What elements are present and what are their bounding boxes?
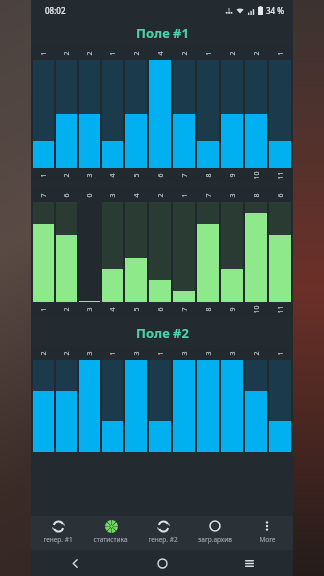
button[interactable]: загр.архив [189,516,241,550]
staticText: 1 [179,192,189,197]
button[interactable]: Back [31,550,119,576]
staticText: 1 [107,350,117,355]
staticText: генер. #2 [148,535,178,544]
staticText: 3 [227,350,237,355]
staticText: 3 [84,306,94,311]
staticText: 8 [203,306,213,311]
staticText: 08:02 [45,5,66,16]
staticText: 1 [155,350,165,355]
staticText: 4 [155,50,165,55]
staticText: 1 [275,50,285,55]
staticText: 3 [84,172,94,177]
other: More [260,519,274,533]
button[interactable]: генер. #2 [137,516,189,550]
staticText: 7 [203,192,213,197]
staticText: 7 [179,172,189,177]
staticText: 3 [227,192,237,197]
staticText: 2 [61,350,71,355]
staticText: 3 [203,350,213,355]
staticText: загр.архив [198,535,232,544]
staticText: 2 [251,50,261,55]
staticText: 7 [179,306,189,311]
other: генер. #1 [51,519,65,533]
staticText: 9 [227,306,237,311]
staticText: 4 [107,306,117,311]
staticText: 4 [131,192,141,197]
staticText: 2 [155,192,165,197]
staticText: 11 [275,170,285,179]
staticText: 9 [227,172,237,177]
staticText: 8 [203,172,213,177]
staticText: Поле #1 [136,24,189,42]
staticText: 4 [107,172,117,177]
button[interactable]: статистика [84,516,137,550]
staticText: 2 [179,50,189,55]
staticText: 1 [275,350,285,355]
staticText: 7 [38,192,48,197]
staticText: 2 [61,306,71,311]
staticText: 2 [38,350,48,355]
staticText: 1 [38,172,48,177]
staticText: 10 [251,304,261,313]
staticText: 3 [107,192,117,197]
button[interactable]: Home [119,550,206,576]
other: загр.архив [208,519,222,533]
staticText: Поле #2 [136,324,189,342]
staticText: 0 [84,192,94,197]
staticText: статистика [93,535,128,544]
staticText: 11 [275,304,285,313]
staticText: 2 [61,172,71,177]
staticText: 6 [61,192,71,197]
staticText: 8 [251,192,261,197]
staticText: More [259,535,276,544]
button[interactable]: генер. #1 [31,516,84,550]
button[interactable]: More [241,516,293,550]
staticText: 2 [251,350,261,355]
button[interactable]: Recents [206,550,293,576]
staticText: 1 [38,306,48,311]
staticText: 5 [131,306,141,311]
staticText: 10 [251,170,261,179]
staticText: 5 [131,172,141,177]
staticText: 1 [38,50,48,55]
staticText: 3 [84,350,94,355]
staticText: 2 [227,50,237,55]
staticText: 34 % [266,5,285,16]
staticText: 1 [107,50,117,55]
staticText: 6 [155,306,165,311]
staticText: 3 [131,350,141,355]
other: статистика [104,519,118,533]
staticText: 6 [275,192,285,197]
staticText: 2 [61,50,71,55]
staticText: 1 [203,50,213,55]
staticText: генер. #1 [43,535,73,544]
staticText: 3 [179,350,189,355]
staticText: 2 [84,50,94,55]
staticText: 6 [155,172,165,177]
other: генер. #2 [156,519,170,533]
staticText: 2 [131,50,141,55]
